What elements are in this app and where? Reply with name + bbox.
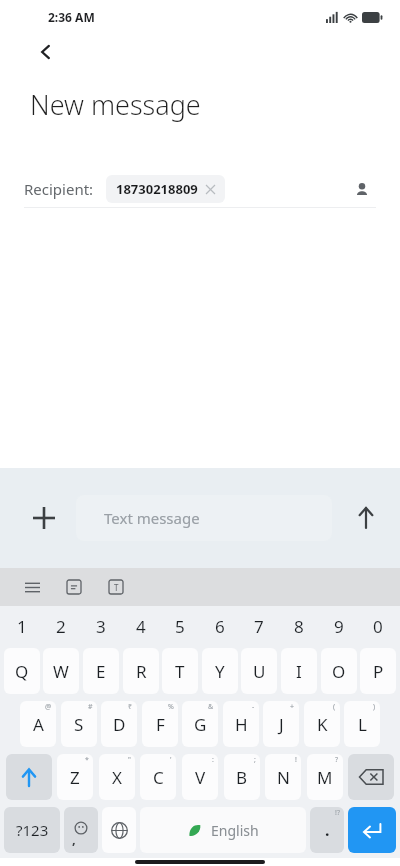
staticText: ?123: [16, 820, 49, 840]
staticText: E: [96, 660, 106, 683]
staticText: ?: [335, 755, 339, 765]
button[interactable]: .: [310, 807, 344, 853]
button[interactable]: Q: [4, 648, 40, 694]
staticText: F: [156, 713, 165, 736]
staticText: J: [279, 713, 284, 736]
staticText: D: [113, 713, 126, 736]
button[interactable]: J: [263, 701, 299, 747]
staticText: ': [170, 755, 172, 765]
button[interactable]: O: [321, 648, 357, 694]
button[interactable]: 8: [281, 606, 317, 646]
button[interactable]: F: [142, 701, 178, 747]
staticText: 1: [17, 615, 27, 638]
staticText: -: [252, 702, 255, 712]
staticText: U: [253, 660, 266, 683]
staticText: N: [277, 766, 290, 789]
button[interactable]: Change language: [102, 807, 136, 853]
button[interactable]: Emoji: [64, 807, 98, 853]
button[interactable]: 18730218809: [116, 175, 215, 203]
button[interactable]: R: [123, 648, 159, 694]
staticText: 3: [96, 615, 106, 638]
button[interactable]: 4: [123, 606, 159, 646]
staticText: 9: [334, 615, 344, 638]
button[interactable]: L: [344, 701, 380, 747]
staticText: ): [373, 702, 376, 712]
staticText: ₹: [128, 702, 133, 712]
button[interactable]: English: [140, 807, 306, 853]
staticText: Q: [15, 660, 29, 683]
button[interactable]: W: [43, 648, 79, 694]
staticText: 7: [254, 615, 264, 638]
button[interactable]: V: [182, 754, 218, 800]
staticText: T: [175, 660, 185, 683]
button[interactable]: Clipboard: [60, 573, 88, 601]
button[interactable]: H: [223, 701, 259, 747]
button[interactable]: 1: [4, 606, 40, 646]
button[interactable]: Back: [28, 34, 64, 70]
button[interactable]: U: [241, 648, 277, 694]
button[interactable]: I: [281, 648, 317, 694]
staticText: Z: [70, 766, 80, 789]
button[interactable]: G: [182, 701, 218, 747]
button[interactable]: 6: [202, 606, 238, 646]
button[interactable]: 2: [43, 606, 79, 646]
staticText: Recipient:: [24, 179, 94, 199]
button[interactable]: 3: [83, 606, 119, 646]
staticText: 2: [56, 615, 66, 638]
staticText: M: [317, 766, 333, 789]
button[interactable]: X: [99, 754, 135, 800]
button[interactable]: K: [304, 701, 340, 747]
button[interactable]: N: [265, 754, 301, 800]
button[interactable]: A: [20, 701, 56, 747]
staticText: Y: [215, 660, 225, 683]
button[interactable]: T: [162, 648, 198, 694]
staticText: T: [114, 582, 119, 593]
staticText: B: [236, 766, 248, 789]
staticText: :: [212, 755, 214, 765]
button[interactable]: Text message: [76, 495, 332, 541]
staticText: V: [195, 766, 206, 789]
button[interactable]: Send: [346, 498, 386, 538]
staticText: !: [295, 755, 297, 765]
staticText: New message: [30, 86, 201, 123]
button[interactable]: Add contact: [348, 175, 376, 203]
button[interactable]: 9: [321, 606, 357, 646]
button[interactable]: Attach: [24, 498, 64, 538]
button[interactable]: ?123: [4, 807, 60, 853]
button[interactable]: Text edit: [102, 573, 130, 601]
button[interactable]: D: [101, 701, 137, 747]
staticText: I: [296, 660, 302, 683]
staticText: 6: [215, 615, 225, 638]
staticText: H: [235, 713, 248, 736]
staticText: English: [211, 821, 259, 840]
button[interactable]: Y: [202, 648, 238, 694]
staticText: P: [373, 660, 384, 683]
button[interactable]: Shift: [6, 754, 52, 800]
button[interactable]: S: [61, 701, 97, 747]
button[interactable]: Enter: [348, 807, 396, 853]
button[interactable]: 5: [162, 606, 198, 646]
staticText: ;: [254, 755, 256, 765]
staticText: *: [85, 755, 89, 765]
staticText: 4: [136, 615, 146, 638]
button[interactable]: 7: [241, 606, 277, 646]
staticText: 0: [373, 615, 383, 638]
button[interactable]: M: [307, 754, 343, 800]
button[interactable]: C: [140, 754, 176, 800]
staticText: .: [325, 819, 330, 841]
staticText: 8: [294, 615, 304, 638]
staticText: G: [194, 713, 207, 736]
button[interactable]: B: [224, 754, 260, 800]
staticText: Text message: [104, 508, 200, 528]
button[interactable]: Z: [57, 754, 93, 800]
staticText: W: [53, 660, 69, 683]
staticText: 18730218809: [116, 180, 198, 198]
button[interactable]: P: [360, 648, 396, 694]
staticText: X: [112, 766, 122, 789]
staticText: R: [136, 660, 147, 683]
button[interactable]: Menu: [18, 573, 46, 601]
staticText: K: [317, 713, 328, 736]
button[interactable]: Backspace: [348, 754, 394, 800]
button[interactable]: E: [83, 648, 119, 694]
button[interactable]: 0: [360, 606, 396, 646]
